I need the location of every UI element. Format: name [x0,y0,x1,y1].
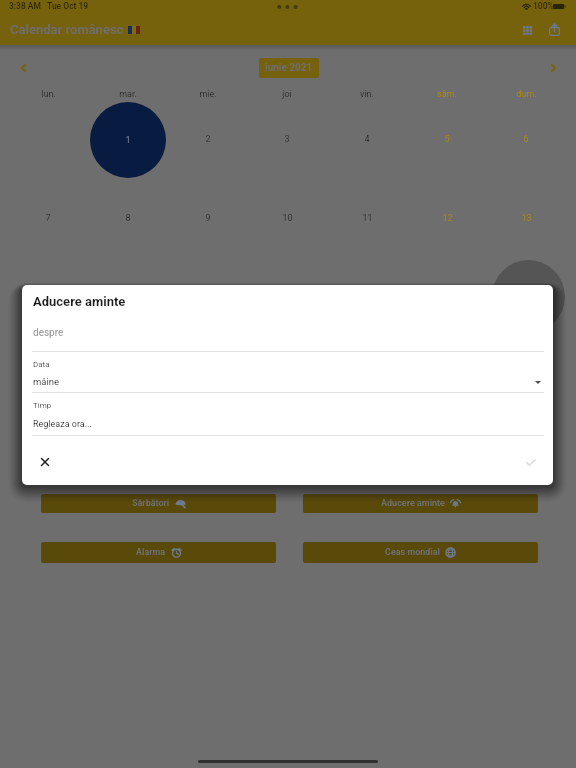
staticText: 7 [45,213,51,224]
staticText: vin. [360,89,374,100]
staticText: Sărbători [132,498,170,509]
staticText: 8 [125,213,131,224]
staticText: Timp [33,401,52,410]
staticText: Data [33,360,50,369]
button[interactable]: Aducere aminte [303,494,538,513]
staticText: Alarma [136,547,166,558]
staticText: mar. [119,89,137,100]
staticText: despre [33,327,64,339]
staticText: Aducere aminte [33,294,126,309]
button[interactable]: Cancel [32,449,58,475]
staticText: 4 [364,134,370,145]
staticText: 100% [533,1,554,11]
button[interactable]: Ceas mondial [303,542,538,563]
button[interactable]: Share [543,18,565,40]
button[interactable]: 6 [486,127,566,152]
button[interactable]: 9 [168,206,248,231]
staticText: dum. [516,89,537,100]
staticText: 2 [205,134,211,145]
staticText: 12 [442,213,453,224]
button[interactable]: Previous month [10,55,36,81]
button[interactable]: Add reminder [492,260,565,333]
staticText: iunie 2021 [265,62,313,74]
staticText: 10 [282,213,293,224]
staticText: Ceas mondial [385,547,440,558]
button[interactable]: 4 [327,127,407,152]
button[interactable]: 13 [486,206,566,231]
button[interactable]: 5 [407,127,487,152]
button[interactable]: 8 [88,206,168,231]
staticText: lun. [41,89,56,100]
staticText: 5 [444,134,450,145]
button[interactable]: iunie 2021 [259,58,319,78]
button[interactable]: 10 [247,206,327,231]
staticText: 3:38 AM Tue Oct 19 [9,1,89,11]
staticText: 9 [205,213,211,224]
button[interactable]: 12 [407,206,487,231]
button[interactable]: 11 [327,206,407,231]
button[interactable]: Alarma [41,542,276,563]
button[interactable]: 3 [247,127,327,152]
button[interactable]: Sărbători [41,494,276,513]
staticText: Aducere aminte [381,498,445,509]
staticText: mie. [199,89,217,100]
staticText: 3 [284,134,290,145]
button[interactable]: Next month [540,55,566,81]
staticText: Regleaza ora... [33,419,92,430]
button[interactable]: Apps [516,19,538,41]
button[interactable]: 1 [90,102,166,178]
button[interactable]: Confirm [518,449,544,475]
staticText: 13 [521,213,532,224]
staticText: mâine [33,376,60,387]
staticText: 6 [523,134,529,145]
staticText: 11 [362,213,373,224]
staticText: 1 [125,135,131,146]
button[interactable]: 2 [168,127,248,152]
staticText: joi [282,89,292,100]
staticText: sâm. [437,89,457,100]
staticText: Calendar românesc [10,22,124,37]
